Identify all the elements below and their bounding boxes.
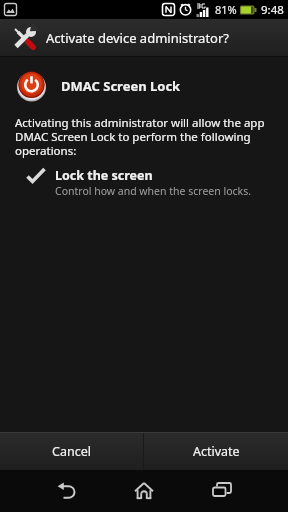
staticText: 81% xyxy=(215,2,237,17)
staticText: Control how and when the screen locks. xyxy=(55,184,251,198)
staticText: Lock the screen xyxy=(55,167,153,184)
button[interactable] xyxy=(108,470,180,512)
staticText: Activate device administrator? xyxy=(46,29,229,47)
staticText: Activate xyxy=(193,443,240,460)
button[interactable] xyxy=(186,470,258,512)
staticText: DMAC Screen Lock xyxy=(61,77,181,95)
staticText: Cancel xyxy=(52,443,91,460)
button[interactable] xyxy=(30,470,102,512)
staticText: Activating this administrator will allow… xyxy=(15,115,265,158)
staticText: 9:48 xyxy=(261,2,284,18)
button[interactable]: Cancel xyxy=(0,433,143,470)
button[interactable]: Activate xyxy=(144,433,288,470)
